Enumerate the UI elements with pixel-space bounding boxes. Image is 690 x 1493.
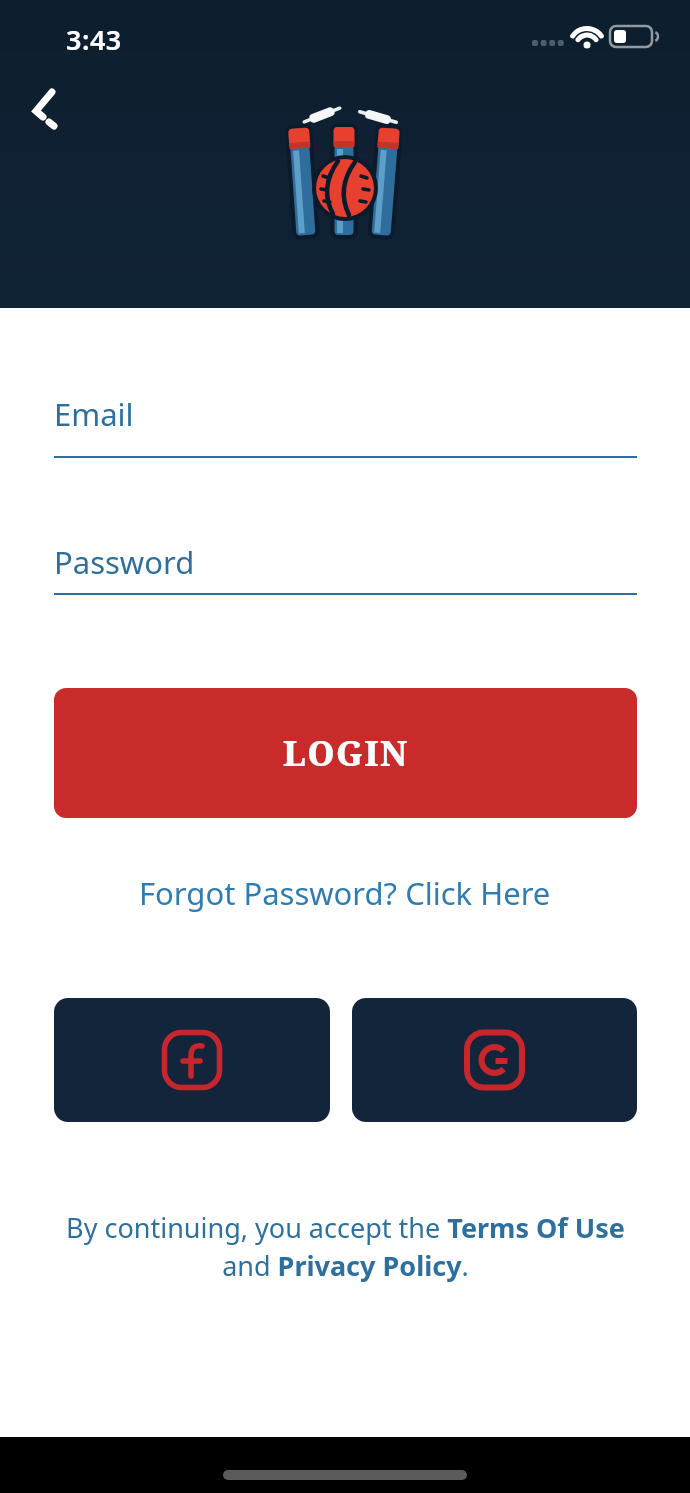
button[interactable] — [18, 82, 74, 138]
staticText: By continuing, you accept the Terms Of U… — [66, 1209, 625, 1284]
staticText: Password — [54, 541, 195, 583]
button[interactable]: By continuing, you accept the Terms Of U… — [0, 1209, 690, 1284]
staticText: LOGIN — [283, 730, 409, 776]
staticText: 3:43 — [66, 21, 122, 58]
button[interactable]: Forgot Password? Click Here — [0, 868, 690, 918]
button[interactable]: LOGIN — [54, 688, 637, 818]
staticText: Email — [54, 393, 134, 435]
button[interactable]: Email — [54, 380, 637, 460]
button[interactable]: Password — [54, 528, 637, 608]
button[interactable] — [54, 998, 330, 1122]
button[interactable] — [352, 998, 637, 1122]
staticText: Forgot Password? Click Here — [139, 872, 551, 914]
